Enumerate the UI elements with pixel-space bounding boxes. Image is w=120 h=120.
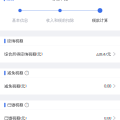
- staticText: 已缴税额(元): [4, 115, 26, 120]
- button[interactable]: 已缴税额(元): [0, 109, 120, 120]
- staticText: 228.47元: [96, 51, 111, 57]
- button[interactable]: 减免税额(元): [0, 77, 120, 94]
- staticText: 标准申报: [52, 0, 68, 1]
- staticText: 基本信息: [12, 18, 28, 23]
- staticText: 0.00: [104, 115, 111, 120]
- staticText: ?: [26, 103, 27, 107]
- staticText: 减免税额(元): [4, 83, 26, 89]
- staticText: 收入和税前扣除: [46, 18, 74, 23]
- button[interactable]: 返回: [0, 0, 17, 4]
- staticText: 减免税额: [7, 70, 23, 75]
- staticText: ?: [26, 71, 27, 75]
- staticText: 综合所得应纳税额(元): [4, 51, 42, 57]
- staticText: 应纳税额: [7, 38, 23, 43]
- staticText: 已缴税额: [7, 102, 23, 107]
- staticText: 0.00: [104, 83, 111, 89]
- button[interactable]: 综合所得应纳税额(元): [0, 45, 120, 62]
- staticText: 税款计算: [92, 18, 108, 23]
- staticText: 返回: [6, 0, 14, 1]
